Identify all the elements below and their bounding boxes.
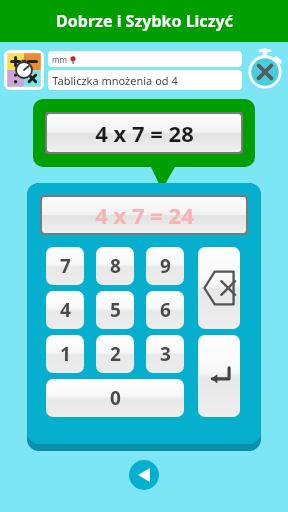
staticText: Dobrze i Szybko Liczyć bbox=[56, 10, 233, 32]
button[interactable]: Enter bbox=[198, 335, 240, 417]
button[interactable]: 4 bbox=[46, 291, 84, 329]
staticText: Tabliczka mnożenia od 4 bbox=[52, 73, 178, 88]
staticText: 3 bbox=[160, 341, 171, 367]
staticText: 4 x 7 = 24 bbox=[95, 200, 194, 230]
button[interactable]: App icon bbox=[4, 50, 44, 90]
button[interactable]: 0 bbox=[46, 379, 184, 417]
button[interactable]: 8 bbox=[96, 247, 134, 285]
button[interactable]: mm bbox=[48, 51, 242, 67]
staticText: 8 bbox=[110, 253, 121, 279]
button[interactable]: Tabliczka mnożenia od 4 bbox=[48, 70, 242, 90]
staticText: 6 bbox=[160, 297, 171, 323]
button[interactable]: Back bbox=[129, 460, 159, 490]
button[interactable]: 6 bbox=[146, 291, 184, 329]
button[interactable]: 2 bbox=[96, 335, 134, 373]
staticText: 9 bbox=[160, 253, 171, 279]
button[interactable]: Backspace bbox=[198, 247, 240, 329]
staticText: mm bbox=[52, 54, 67, 65]
button[interactable]: 5 bbox=[96, 291, 134, 329]
staticText: 0 bbox=[110, 385, 121, 411]
button[interactable]: 9 bbox=[146, 247, 184, 285]
staticText: 4 x 7 = 28 bbox=[95, 118, 194, 148]
staticText: 1 bbox=[60, 341, 71, 367]
staticText: 2 bbox=[110, 341, 121, 367]
staticText: 5 bbox=[110, 297, 121, 323]
staticText: 7 bbox=[60, 253, 71, 279]
button[interactable]: 1 bbox=[46, 335, 84, 373]
staticText: 4 bbox=[60, 297, 71, 323]
button[interactable]: 7 bbox=[46, 247, 84, 285]
button[interactable]: 3 bbox=[146, 335, 184, 373]
button[interactable]: Stop timer bbox=[246, 51, 284, 89]
